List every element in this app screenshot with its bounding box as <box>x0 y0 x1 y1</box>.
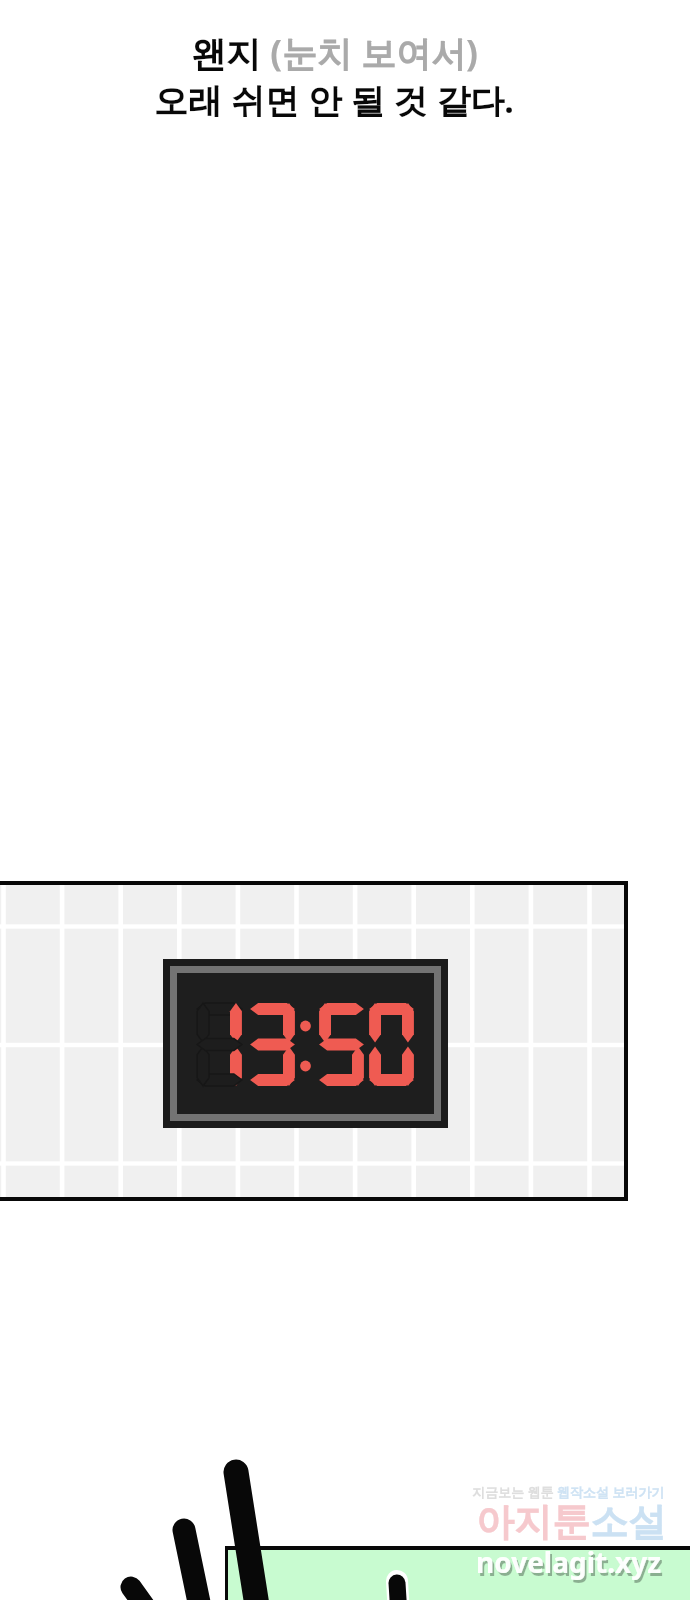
staticText: 아지툰소설 <box>476 1498 666 1546</box>
staticText: novelagit.xyz <box>476 1543 662 1581</box>
button[interactable]: 지금보는 웹툰 웹작소설 보러가기 <box>0 1483 690 1587</box>
button[interactable]: Comic panel, digital clock showing 13:50 <box>0 881 628 1201</box>
staticText: 오래 쉬면 안 될 것 같다. <box>154 77 514 123</box>
staticText: 지금보는 웹툰 웹작소설 보러가기 <box>472 1483 665 1501</box>
staticText: 왠지 (눈치 보여서) <box>191 29 478 77</box>
staticText: novelagit.xyz <box>478 1546 664 1584</box>
